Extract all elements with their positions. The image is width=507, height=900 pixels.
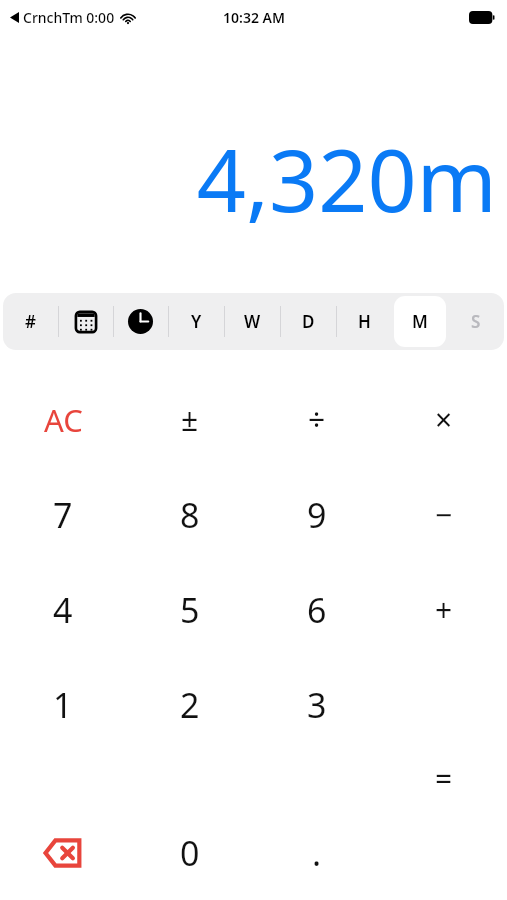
staticText: 7 — [53, 492, 73, 538]
staticText: 10:32 AM — [223, 8, 285, 27]
button[interactable]: Y — [168, 293, 224, 350]
staticText: 1 — [53, 682, 73, 728]
staticText: 0 — [180, 830, 200, 876]
staticText: 4,320m — [196, 120, 497, 237]
staticText: H — [358, 310, 371, 333]
button[interactable]: AC — [0, 372, 126, 467]
staticText: W — [244, 310, 261, 333]
button[interactable]: 6 — [253, 562, 380, 657]
staticText: AC — [44, 399, 83, 441]
staticText: # — [25, 310, 36, 333]
button[interactable]: 8 — [126, 467, 253, 562]
staticText: 6 — [307, 587, 327, 633]
staticText: 5 — [180, 587, 200, 633]
staticText: . — [312, 830, 322, 876]
button[interactable]: 2 — [126, 657, 253, 752]
staticText: Y — [191, 310, 202, 333]
staticText: = — [435, 758, 453, 799]
button[interactable]: 4 — [0, 562, 126, 657]
staticText: − — [435, 494, 453, 535]
staticText: S — [471, 310, 481, 333]
button[interactable]: 1 — [0, 657, 126, 752]
button[interactable]: − — [380, 467, 507, 562]
button[interactable]: ÷ — [253, 372, 380, 467]
button[interactable]: D — [280, 293, 336, 350]
button[interactable]: × — [380, 372, 507, 467]
button[interactable]: Clock — [113, 293, 168, 350]
button[interactable]: = — [380, 752, 507, 805]
staticText: 4 — [53, 587, 73, 633]
staticText: D — [302, 310, 315, 333]
button[interactable]: 5 — [126, 562, 253, 657]
staticText: + — [435, 589, 453, 630]
other: Calendar — [74, 310, 98, 334]
button[interactable]: 7 — [0, 467, 126, 562]
button[interactable]: + — [380, 562, 507, 657]
button[interactable]: 9 — [253, 467, 380, 562]
other: Clock — [128, 309, 153, 334]
button[interactable]: H — [336, 293, 392, 350]
button[interactable]: Calendar — [58, 293, 113, 350]
button[interactable]: S — [448, 293, 504, 350]
staticText: × — [435, 399, 453, 440]
staticText: ÷ — [308, 399, 326, 440]
staticText: 3 — [307, 682, 327, 728]
button[interactable]: 3 — [253, 657, 380, 752]
staticText: M — [412, 310, 428, 333]
button[interactable]: M — [392, 293, 448, 350]
button[interactable]: # — [3, 293, 58, 350]
button[interactable]: ± — [126, 372, 253, 467]
button[interactable]: . — [253, 805, 380, 900]
button[interactable]: W — [224, 293, 280, 350]
staticText: ± — [181, 399, 199, 440]
button[interactable]: Backspace — [0, 805, 126, 900]
staticText: 2 — [180, 682, 200, 728]
staticText: CrnchTm 0:00 — [23, 8, 115, 27]
other: Backspace — [44, 839, 82, 867]
staticText: 9 — [307, 492, 327, 538]
staticText: 8 — [180, 492, 200, 538]
button[interactable]: 0 — [126, 805, 253, 900]
